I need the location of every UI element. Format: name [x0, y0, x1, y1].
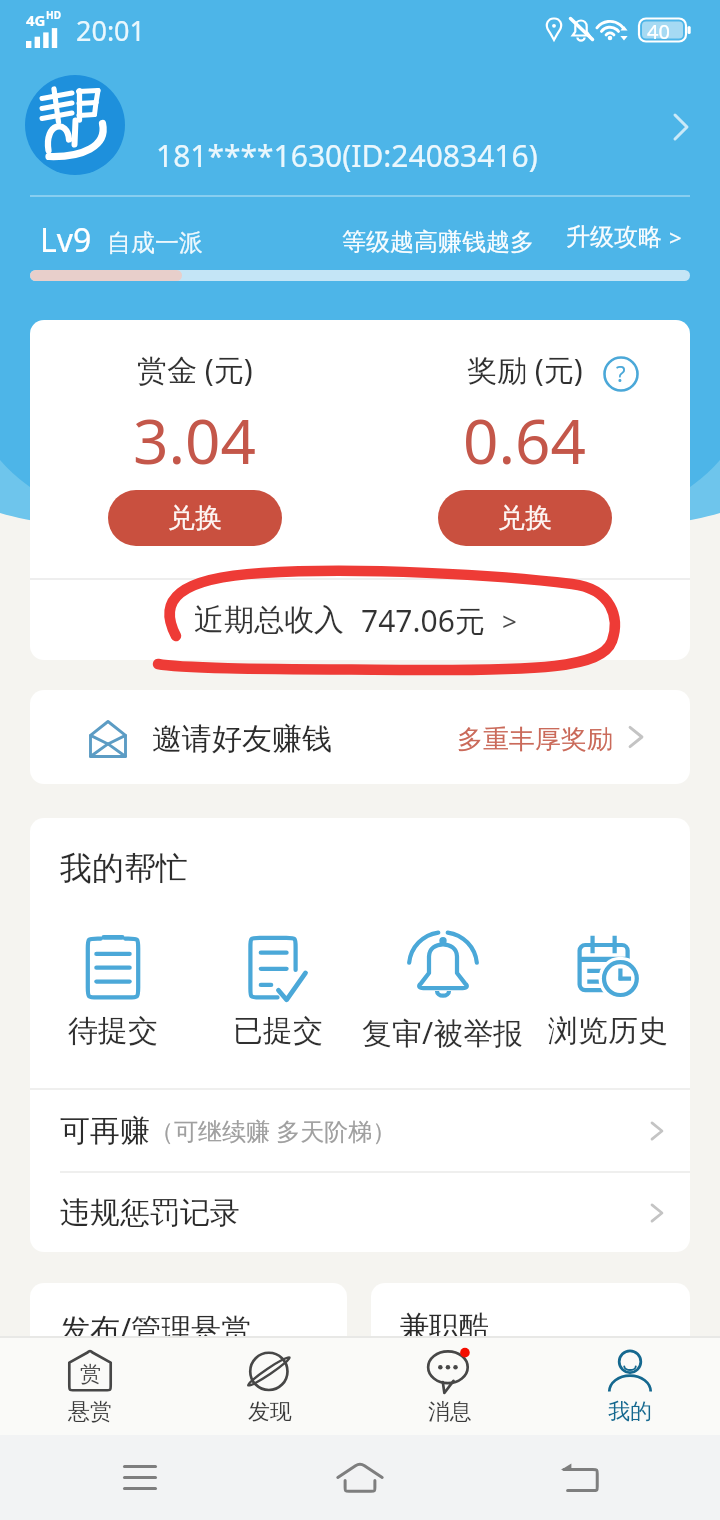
staticText: HD — [46, 8, 61, 22]
staticText: ? — [616, 358, 626, 388]
staticText: （可继续赚 多天阶梯） — [150, 1114, 397, 1147]
staticText: 赏金 (元) — [137, 349, 253, 390]
staticText: 浏览历史 — [548, 1012, 668, 1050]
staticText: Lv9 — [40, 218, 92, 262]
staticText: 待提交 — [68, 1012, 158, 1050]
button[interactable]: 181****1630(ID:24083416) — [0, 58, 720, 196]
staticText: 40 — [647, 18, 670, 45]
staticText: 升级攻略 — [566, 222, 662, 252]
button[interactable]: 消息 — [360, 1338, 540, 1435]
button[interactable]: 待提交 — [30, 923, 195, 1050]
button[interactable]: 发布/管理悬赏 — [30, 1283, 347, 1423]
staticText: 181****1630(ID:24083416) — [156, 135, 538, 176]
staticText: 兼职酷 — [399, 1308, 489, 1346]
staticText: > — [502, 603, 517, 638]
button[interactable]: Help — [603, 356, 639, 392]
button[interactable]: 违规惩罚记录 — [30, 1173, 690, 1252]
staticText: 多重丰厚奖励 — [457, 723, 613, 756]
staticText: 0.64 — [463, 398, 587, 482]
button[interactable]: 近期总收入 — [30, 580, 690, 660]
button[interactable]: 兑换 — [108, 490, 282, 546]
staticText: 兑换 — [498, 501, 552, 535]
staticText: 4G — [26, 10, 46, 30]
button[interactable]: 复审/被举报 — [360, 923, 525, 1053]
button[interactable]: 发现 — [180, 1338, 360, 1435]
button[interactable]: 赏 — [0, 1338, 180, 1435]
button[interactable]: 我的 — [540, 1338, 720, 1435]
staticText: 可再赚 — [60, 1112, 150, 1150]
staticText: 消息 — [428, 1398, 472, 1426]
button[interactable]: 兼职酷 — [371, 1283, 690, 1423]
staticText: 邀请好友赚钱 — [152, 720, 332, 758]
button[interactable]: Recents — [105, 1443, 175, 1513]
staticText: 违规惩罚记录 — [60, 1194, 240, 1232]
button[interactable]: Back — [544, 1443, 614, 1513]
button[interactable]: 可再赚 — [30, 1090, 690, 1171]
staticText: 已提交 — [233, 1012, 323, 1050]
staticText: > — [669, 222, 682, 252]
staticText: 兑换 — [168, 501, 222, 535]
staticText: 赏 — [80, 1361, 101, 1387]
staticText: 近期总收入 — [194, 601, 344, 639]
button[interactable]: 邀请好友赚钱 — [30, 690, 690, 784]
button[interactable]: Home — [325, 1443, 395, 1513]
staticText: 3.04 — [133, 398, 257, 482]
button[interactable]: 浏览历史 — [525, 923, 690, 1050]
button[interactable]: 升级攻略 — [562, 218, 686, 256]
staticText: 复审/被举报 — [362, 1012, 524, 1053]
button[interactable]: 已提交 — [195, 923, 360, 1050]
staticText: 发布/管理悬赏 — [60, 1308, 252, 1349]
staticText: 我的 — [608, 1398, 652, 1426]
staticText: 等级越高赚钱越多 — [342, 227, 534, 257]
staticText: 发现 — [248, 1398, 292, 1426]
staticText: 20:01 — [76, 12, 146, 49]
staticText: 悬赏 — [68, 1398, 112, 1426]
staticText: 747.06元 — [361, 600, 485, 641]
button[interactable]: 兑换 — [438, 490, 612, 546]
staticText: 自成一派 — [107, 228, 203, 258]
staticText: 奖励 (元) — [467, 349, 583, 390]
staticText: 我的帮忙 — [60, 848, 188, 888]
